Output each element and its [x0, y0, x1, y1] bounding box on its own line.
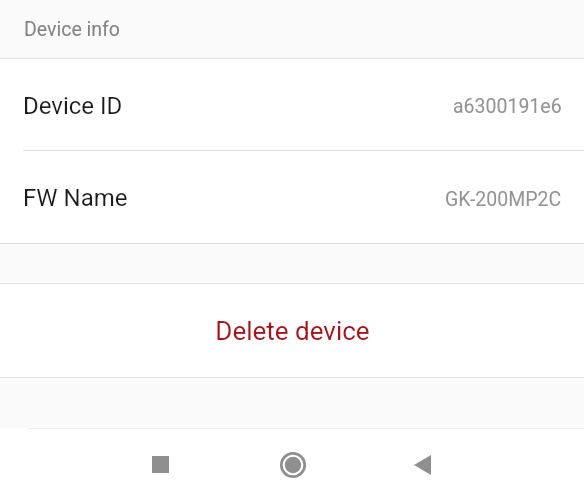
- staticText: Device info: [24, 18, 120, 41]
- button[interactable]: Home: [226, 429, 357, 500]
- staticText: a6300191e6: [453, 95, 562, 118]
- staticText: FW Name: [23, 184, 128, 212]
- button[interactable]: Device ID: [0, 59, 584, 150]
- button[interactable]: Back: [357, 429, 488, 500]
- button[interactable]: FW Name: [0, 151, 584, 243]
- staticText: GK-200MP2C: [445, 188, 562, 211]
- staticText: Delete device: [215, 316, 370, 346]
- button[interactable]: Recent apps: [95, 429, 226, 500]
- staticText: Device ID: [23, 92, 123, 120]
- button[interactable]: Delete device: [0, 284, 584, 377]
